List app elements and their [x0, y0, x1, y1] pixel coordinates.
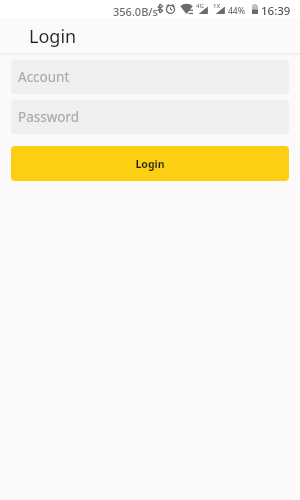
staticText: 16:39 — [261, 3, 291, 19]
staticText: Account — [18, 68, 70, 86]
staticText: Password — [18, 108, 80, 126]
button[interactable]: Password — [11, 100, 289, 134]
staticText: Login — [29, 24, 77, 49]
button[interactable]: Account — [11, 60, 289, 94]
staticText: 1X — [213, 2, 221, 10]
staticText: 356.0B/s — [113, 4, 158, 19]
staticText: 4G — [196, 2, 204, 10]
staticText: Login — [135, 157, 165, 171]
button[interactable]: Login — [11, 146, 289, 181]
staticText: 44% — [228, 5, 245, 17]
